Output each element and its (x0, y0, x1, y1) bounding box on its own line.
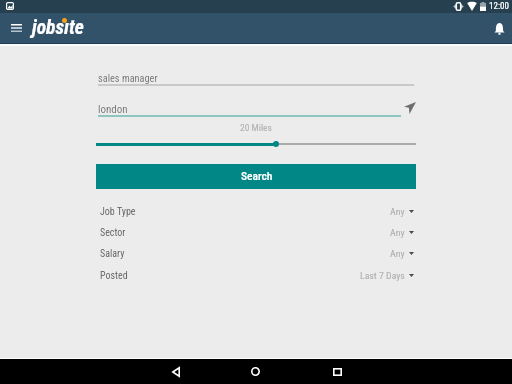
staticText: sales manager (98, 72, 158, 84)
staticText: Posted (100, 270, 128, 282)
staticText: Any (390, 206, 405, 217)
button[interactable]: Search (96, 164, 416, 189)
staticText: Any (390, 227, 405, 238)
staticText: london (98, 103, 128, 116)
staticText: 12:00 (489, 1, 509, 12)
button[interactable]: Recent apps (325, 359, 350, 384)
button[interactable]: Open navigation menu (4, 13, 28, 43)
button[interactable]: Back (163, 359, 188, 384)
staticText: 20 Miles (240, 122, 272, 133)
staticText: Salary (100, 248, 125, 260)
button[interactable]: Use my location (401, 100, 418, 117)
staticText: Last 7 Days (360, 270, 405, 281)
button[interactable]: Posted (96, 265, 416, 286)
button[interactable]: london (96, 100, 401, 117)
staticText: Job Type (100, 206, 136, 218)
button[interactable]: Salary (96, 243, 416, 264)
button[interactable]: sales manager (96, 69, 414, 86)
button[interactable]: Home (243, 359, 268, 384)
button[interactable]: Sector (96, 222, 416, 243)
staticText: jobsıte (32, 16, 84, 39)
button[interactable] (96, 136, 416, 152)
staticText: Sector (100, 227, 126, 239)
button[interactable]: Job Type (96, 201, 416, 222)
staticText: Any (390, 248, 405, 259)
button[interactable]: Notifications (486, 13, 512, 43)
staticText: Search (241, 169, 273, 182)
